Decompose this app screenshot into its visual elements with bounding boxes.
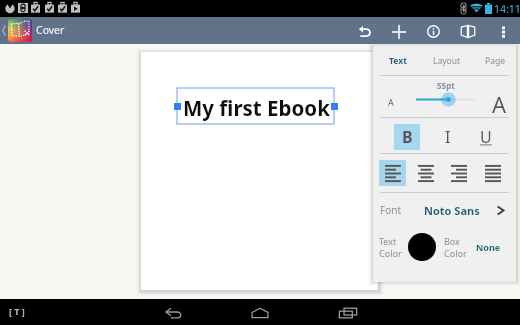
button[interactable]: More options xyxy=(487,17,519,44)
button[interactable]: Page xyxy=(476,46,513,75)
button[interactable]: Justify xyxy=(479,160,506,186)
staticText: Text xyxy=(379,235,397,247)
staticText: Layout xyxy=(433,55,461,67)
button[interactable]: Home xyxy=(243,299,277,325)
staticText: I xyxy=(445,126,451,148)
button[interactable]: Undo xyxy=(348,17,380,44)
staticText: Text xyxy=(389,55,407,67)
button[interactable]: Text xyxy=(379,232,436,262)
staticText: Color xyxy=(379,247,402,259)
button[interactable]: Text xyxy=(382,46,413,75)
button[interactable]: Up xyxy=(0,19,71,42)
staticText: B xyxy=(402,126,413,148)
staticText: Font xyxy=(380,203,402,217)
button[interactable]: Layout xyxy=(424,46,469,75)
button[interactable]: My first Ebook xyxy=(177,88,334,124)
staticText: Noto Sans xyxy=(424,203,480,218)
staticText: Page xyxy=(485,55,505,67)
button[interactable]: Font xyxy=(373,192,516,228)
other: Up xyxy=(1,24,7,37)
button[interactable]: Font size xyxy=(412,91,479,108)
button[interactable]: Align center xyxy=(412,160,439,186)
button[interactable]: Preview xyxy=(452,17,484,44)
button[interactable]: Add xyxy=(383,17,415,44)
staticText: A xyxy=(492,89,507,119)
staticText: A xyxy=(388,96,394,108)
button[interactable]: Box xyxy=(444,232,501,262)
button[interactable]: Info xyxy=(417,17,449,44)
button[interactable]: Back xyxy=(156,299,190,325)
staticText: My first Ebook xyxy=(183,94,330,122)
button[interactable]: B xyxy=(394,124,420,150)
button[interactable]: I xyxy=(435,124,461,150)
button[interactable]: Align right xyxy=(445,160,472,186)
staticText: U xyxy=(480,126,492,148)
button[interactable]: Recent apps xyxy=(331,299,365,325)
button[interactable]: [ T ] xyxy=(9,305,25,317)
staticText: Color xyxy=(444,247,467,259)
staticText: 55pt xyxy=(437,80,455,91)
button[interactable]: Align left xyxy=(379,160,406,186)
staticText: Cover xyxy=(36,23,65,37)
staticText: 14:11 xyxy=(494,2,520,16)
staticText: Box xyxy=(444,235,460,247)
staticText: None xyxy=(476,241,501,253)
button[interactable]: U xyxy=(473,124,499,150)
